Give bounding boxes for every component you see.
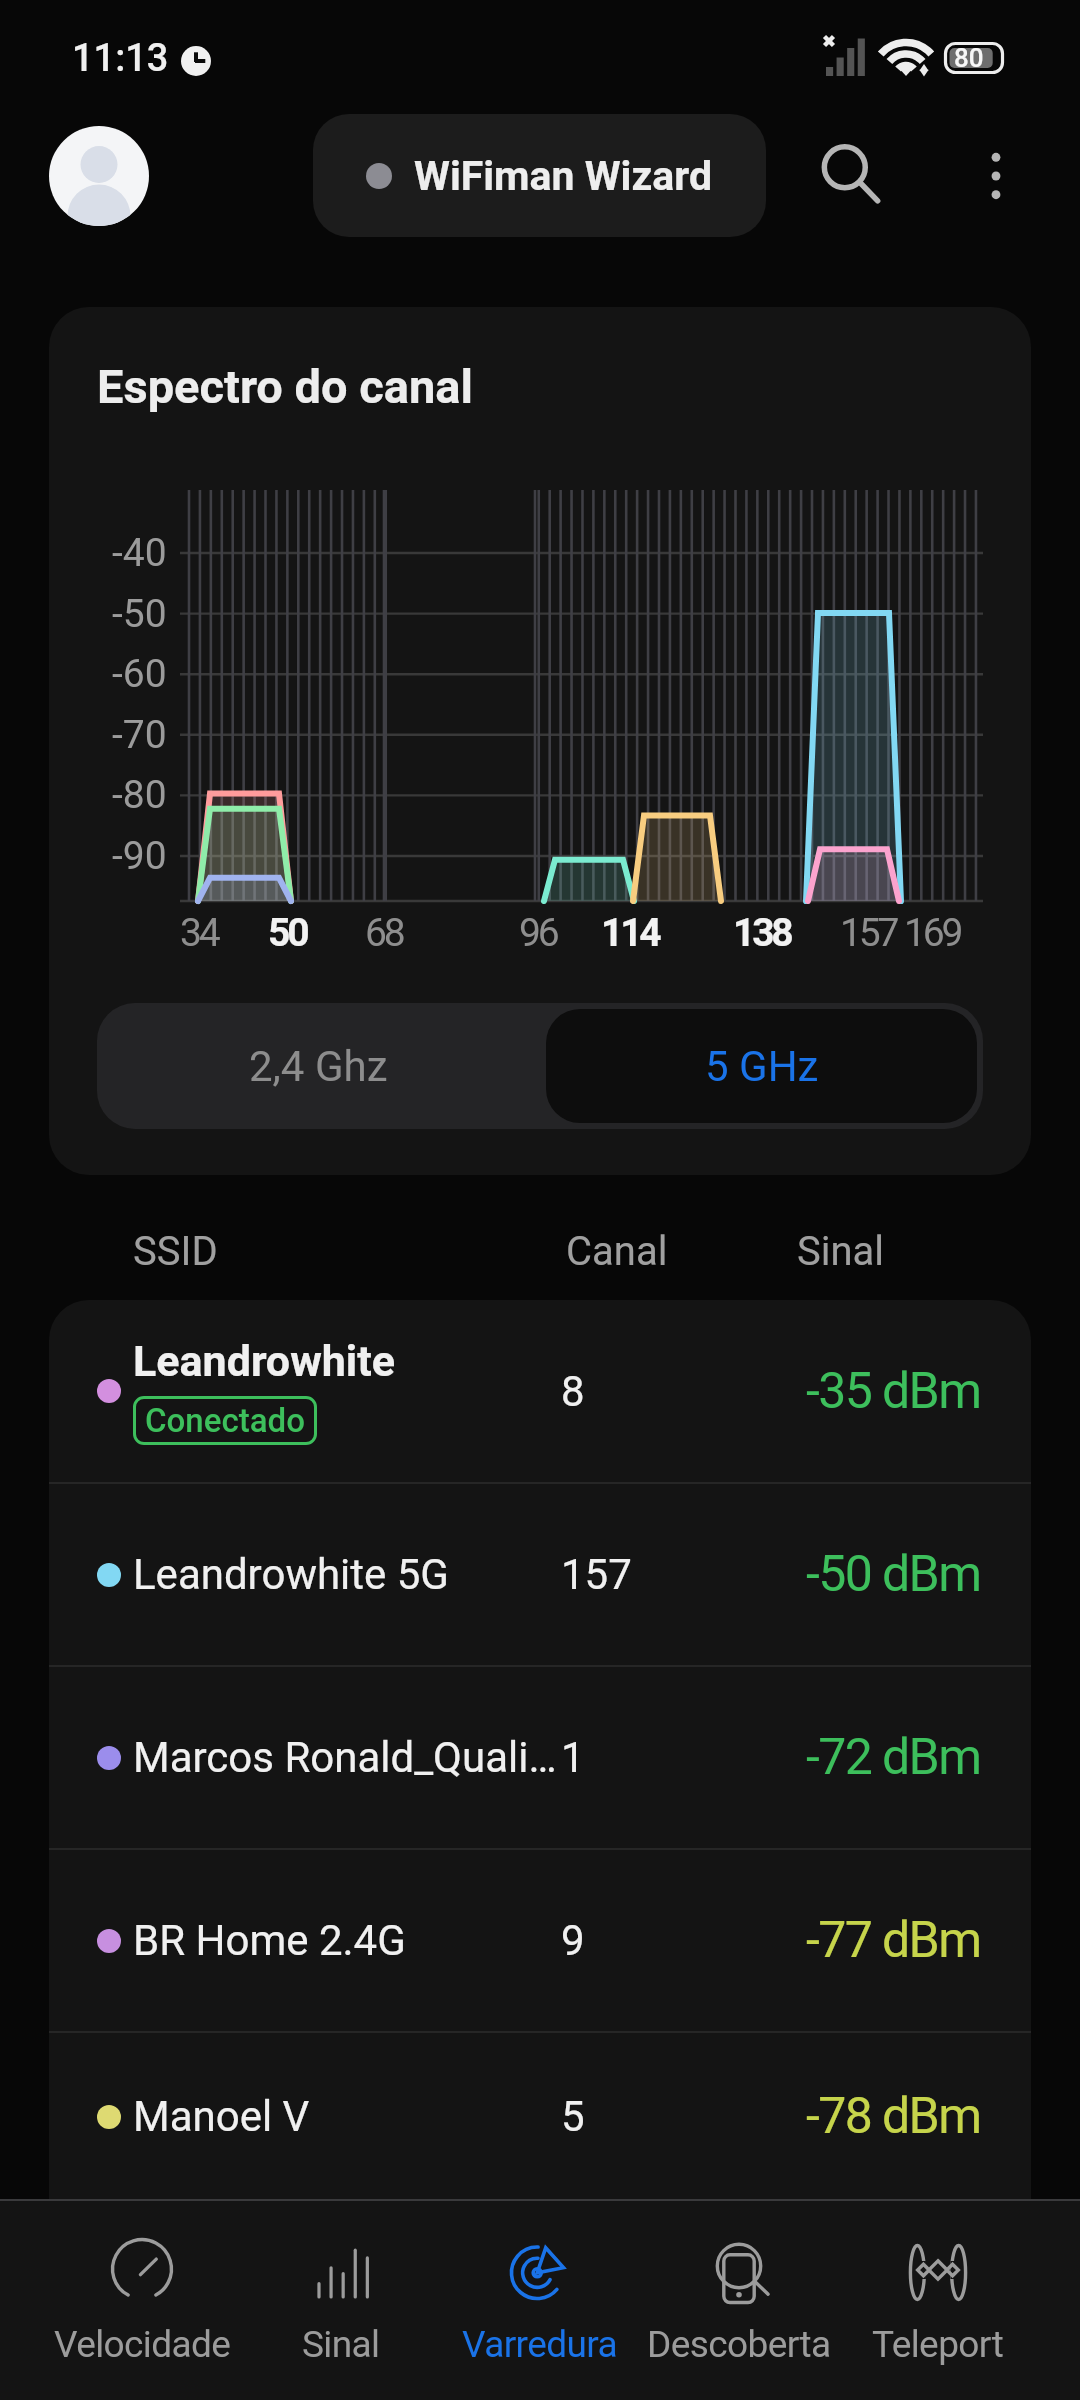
staticText: -50 — [112, 591, 167, 637]
button[interactable]: More options — [940, 120, 1052, 232]
staticText: 5 GHz — [705, 1042, 819, 1091]
button[interactable]: Manoel V — [49, 2033, 1031, 2200]
staticText: BR Home 2.4G — [133, 1916, 406, 1965]
staticText: Sinal — [302, 2323, 380, 2366]
staticText: 5 — [561, 2092, 585, 2141]
staticText: Velocidade — [54, 2323, 231, 2366]
staticText: Teleport — [872, 2323, 1004, 2366]
staticText: Marcos Ronald_Qualit… — [133, 1733, 565, 1782]
button[interactable]: Descoberta — [639, 2199, 838, 2400]
staticText: -78 dBm — [806, 2087, 981, 2146]
staticText: 1 — [561, 1733, 585, 1782]
staticText: Conectado — [145, 1401, 305, 1440]
staticText: Leandrowhite — [133, 1336, 396, 1386]
staticText: Canal — [566, 1228, 668, 1275]
staticText: -77 dBm — [806, 1911, 981, 1970]
staticText: 50 — [268, 910, 307, 956]
staticText: 157 — [561, 1550, 632, 1599]
staticText: -80 — [112, 772, 167, 818]
staticText: Descoberta — [647, 2323, 831, 2366]
button[interactable]: Leandrowhite — [49, 1300, 1031, 1482]
button[interactable]: Profile — [49, 126, 149, 226]
staticText: -90 — [112, 833, 167, 879]
button[interactable]: 2,4 Ghz — [97, 1003, 540, 1129]
staticText: 80 — [954, 43, 984, 73]
button[interactable]: WiFiman Wizard — [313, 114, 766, 237]
staticText: Manoel V — [133, 2092, 310, 2141]
button[interactable]: Leandrowhite 5G — [49, 1484, 1031, 1665]
staticText: 157 — [840, 910, 897, 956]
staticText: WiFiman Wizard — [414, 152, 713, 200]
staticText: 138 — [733, 910, 791, 956]
staticText: 11:13 — [72, 36, 169, 81]
button[interactable]: 5 GHz — [546, 1009, 977, 1123]
button[interactable]: BR Home 2.4G — [49, 1850, 1031, 2031]
staticText: Leandrowhite 5G — [133, 1550, 449, 1599]
staticText: 2,4 Ghz — [249, 1042, 388, 1091]
staticText: -72 dBm — [806, 1728, 981, 1787]
staticText: 9 — [561, 1916, 585, 1965]
button[interactable]: Velocidade — [43, 2199, 241, 2400]
staticText: Espectro do canal — [97, 359, 474, 414]
staticText: SSID — [133, 1228, 218, 1275]
staticText: -60 — [112, 651, 167, 697]
staticText: 8 — [561, 1367, 585, 1416]
button[interactable]: Sinal — [241, 2199, 440, 2400]
staticText: -35 dBm — [806, 1362, 981, 1421]
button[interactable]: Teleport — [838, 2199, 1037, 2400]
staticText: 169 — [904, 910, 961, 956]
staticText: 114 — [601, 910, 659, 956]
staticText: 68 — [365, 910, 403, 956]
button[interactable]: Marcos Ronald_Qualit… — [49, 1667, 1031, 1848]
staticText: Sinal — [797, 1228, 885, 1275]
staticText: Varredura — [462, 2323, 618, 2366]
button[interactable]: Search — [795, 120, 907, 232]
staticText: 96 — [519, 910, 557, 956]
button[interactable]: Varredura — [440, 2199, 639, 2400]
staticText: 34 — [180, 910, 218, 956]
staticText: -50 dBm — [806, 1545, 981, 1604]
staticText: -40 — [112, 530, 167, 576]
staticText: -70 — [112, 712, 167, 758]
